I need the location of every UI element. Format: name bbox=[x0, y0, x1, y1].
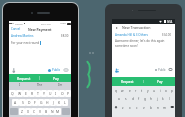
staticText: a bbox=[118, 97, 120, 101]
button[interactable]: f bbox=[136, 95, 142, 103]
button[interactable]: n bbox=[154, 104, 161, 112]
button[interactable]: M bbox=[55, 108, 61, 115]
button[interactable]: K bbox=[56, 99, 62, 106]
button[interactable]: Pay bbox=[144, 77, 175, 86]
button[interactable]: G bbox=[38, 99, 44, 106]
staticText: Public bbox=[52, 68, 61, 72]
button[interactable]: u bbox=[151, 87, 157, 95]
staticText: W bbox=[18, 91, 22, 96]
button[interactable]: Y bbox=[41, 90, 47, 97]
staticText: S bbox=[22, 100, 24, 105]
button[interactable]: R bbox=[29, 90, 35, 97]
staticText: 100% bbox=[60, 22, 66, 25]
staticText: m bbox=[163, 106, 166, 110]
button[interactable]: Camera bbox=[64, 68, 68, 72]
button[interactable]: E bbox=[23, 90, 29, 97]
button[interactable]: Camera bbox=[169, 68, 172, 71]
staticText: Q bbox=[11, 91, 14, 96]
button[interactable]: k bbox=[160, 95, 166, 103]
staticText: x bbox=[129, 106, 131, 110]
staticText: V bbox=[39, 109, 42, 114]
button[interactable]: x bbox=[126, 104, 133, 112]
button[interactable]: O bbox=[59, 90, 65, 97]
button[interactable]: t bbox=[139, 87, 145, 95]
button[interactable]: I'm bbox=[50, 82, 71, 88]
button[interactable]: o bbox=[163, 87, 169, 95]
button[interactable]: The bbox=[29, 82, 50, 88]
staticText: K bbox=[58, 100, 61, 105]
staticText: New Transaction bbox=[122, 25, 151, 30]
staticText: Cancel bbox=[11, 27, 21, 31]
button[interactable]: z bbox=[119, 104, 126, 112]
staticText: Amanda Hill & 3 Others bbox=[115, 33, 149, 37]
button[interactable]: w bbox=[119, 87, 126, 95]
button[interactable]: Shift bbox=[114, 105, 118, 109]
button[interactable]: C bbox=[31, 108, 37, 115]
button[interactable]: r bbox=[133, 87, 139, 95]
button[interactable]: T bbox=[35, 90, 41, 97]
button[interactable]: Back bbox=[115, 26, 119, 30]
button[interactable]: D bbox=[26, 99, 32, 106]
button[interactable]: y bbox=[145, 87, 151, 95]
button[interactable]: s bbox=[122, 95, 129, 103]
button[interactable]: c bbox=[133, 104, 140, 112]
button[interactable]: i bbox=[157, 87, 163, 95]
button[interactable]: I bbox=[53, 90, 59, 97]
staticText: $34.00 bbox=[162, 33, 172, 37]
button[interactable]: W bbox=[16, 90, 23, 97]
button[interactable]: F bbox=[32, 99, 38, 106]
button[interactable]: Public bbox=[48, 68, 61, 72]
button[interactable]: h bbox=[148, 95, 154, 103]
button[interactable]: Z bbox=[19, 108, 25, 115]
staticText: h bbox=[150, 97, 152, 101]
button[interactable]: N bbox=[49, 108, 55, 115]
staticText: Z bbox=[21, 109, 23, 114]
button[interactable]: p bbox=[169, 87, 175, 95]
button[interactable]: U bbox=[47, 90, 53, 97]
staticText: Pay bbox=[157, 80, 163, 84]
staticText: y bbox=[147, 89, 149, 93]
button[interactable]: Request bbox=[9, 74, 39, 82]
staticText: p bbox=[171, 89, 173, 93]
button[interactable]: Public bbox=[155, 68, 166, 72]
button[interactable]: Pay bbox=[40, 74, 71, 82]
button[interactable]: q bbox=[112, 87, 119, 95]
button[interactable]: I bbox=[9, 82, 29, 88]
button[interactable]: Backspace bbox=[170, 105, 174, 109]
button[interactable]: Add person bbox=[12, 68, 16, 72]
button[interactable]: j bbox=[154, 95, 160, 103]
button[interactable]: V bbox=[37, 108, 43, 115]
button[interactable]: g bbox=[142, 95, 148, 103]
staticText: Pay bbox=[53, 76, 59, 81]
button[interactable]: b bbox=[147, 104, 154, 112]
button[interactable]: e bbox=[126, 87, 133, 95]
staticText: I bbox=[19, 83, 20, 87]
staticText: o bbox=[165, 89, 167, 93]
button[interactable]: A bbox=[12, 99, 19, 106]
button[interactable]: l bbox=[166, 95, 172, 103]
staticText: Public bbox=[158, 68, 166, 72]
button[interactable]: H bbox=[44, 99, 50, 106]
staticText: R bbox=[31, 91, 34, 96]
staticText: s bbox=[125, 97, 127, 101]
button[interactable]: L bbox=[62, 99, 68, 106]
staticText: G bbox=[40, 100, 43, 105]
button[interactable]: P bbox=[65, 90, 71, 97]
button[interactable]: B bbox=[43, 108, 49, 115]
staticText: H bbox=[46, 100, 49, 105]
button[interactable]: Request bbox=[112, 77, 143, 86]
button[interactable]: Q bbox=[9, 90, 16, 97]
staticText: $8.00 bbox=[61, 34, 69, 38]
button[interactable]: Add people bbox=[115, 68, 119, 72]
button[interactable]: d bbox=[129, 95, 136, 103]
button[interactable]: X bbox=[25, 108, 31, 115]
button[interactable]: S bbox=[19, 99, 26, 106]
button[interactable]: Cancel bbox=[11, 27, 21, 31]
button[interactable]: v bbox=[140, 104, 147, 112]
button[interactable]: m bbox=[161, 104, 168, 112]
staticText: X bbox=[27, 109, 29, 114]
button[interactable]: a bbox=[115, 95, 122, 103]
button[interactable]: J bbox=[50, 99, 56, 106]
